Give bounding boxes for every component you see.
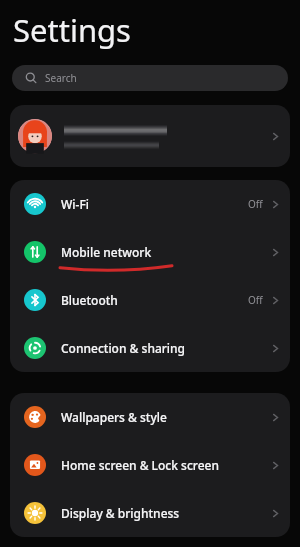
staticText: Mobile network xyxy=(61,244,270,260)
staticText: Settings xyxy=(13,9,131,51)
staticText: Display & brightness xyxy=(61,505,270,521)
staticText: Search xyxy=(45,71,77,85)
button[interactable]: Mobile network xyxy=(10,228,290,276)
staticText: Connection & sharing xyxy=(61,340,270,356)
button[interactable]: Bluetooth xyxy=(10,276,290,324)
button[interactable]: Search xyxy=(12,65,288,91)
button[interactable]: Home screen & Lock screen xyxy=(10,441,290,489)
button[interactable]: Wi-Fi xyxy=(10,180,290,228)
staticText: Off xyxy=(248,293,263,307)
staticText: Home screen & Lock screen xyxy=(61,457,270,473)
staticText: Wi-Fi xyxy=(61,196,248,212)
staticText: Wallpapers & style xyxy=(61,409,270,425)
staticText: Off xyxy=(248,197,263,211)
button[interactable]: Wallpapers & style xyxy=(10,393,290,441)
button[interactable]: Display & brightness xyxy=(10,489,290,537)
staticText: Bluetooth xyxy=(61,292,248,308)
button[interactable]: Connection & sharing xyxy=(10,324,290,372)
button[interactable] xyxy=(10,105,290,167)
